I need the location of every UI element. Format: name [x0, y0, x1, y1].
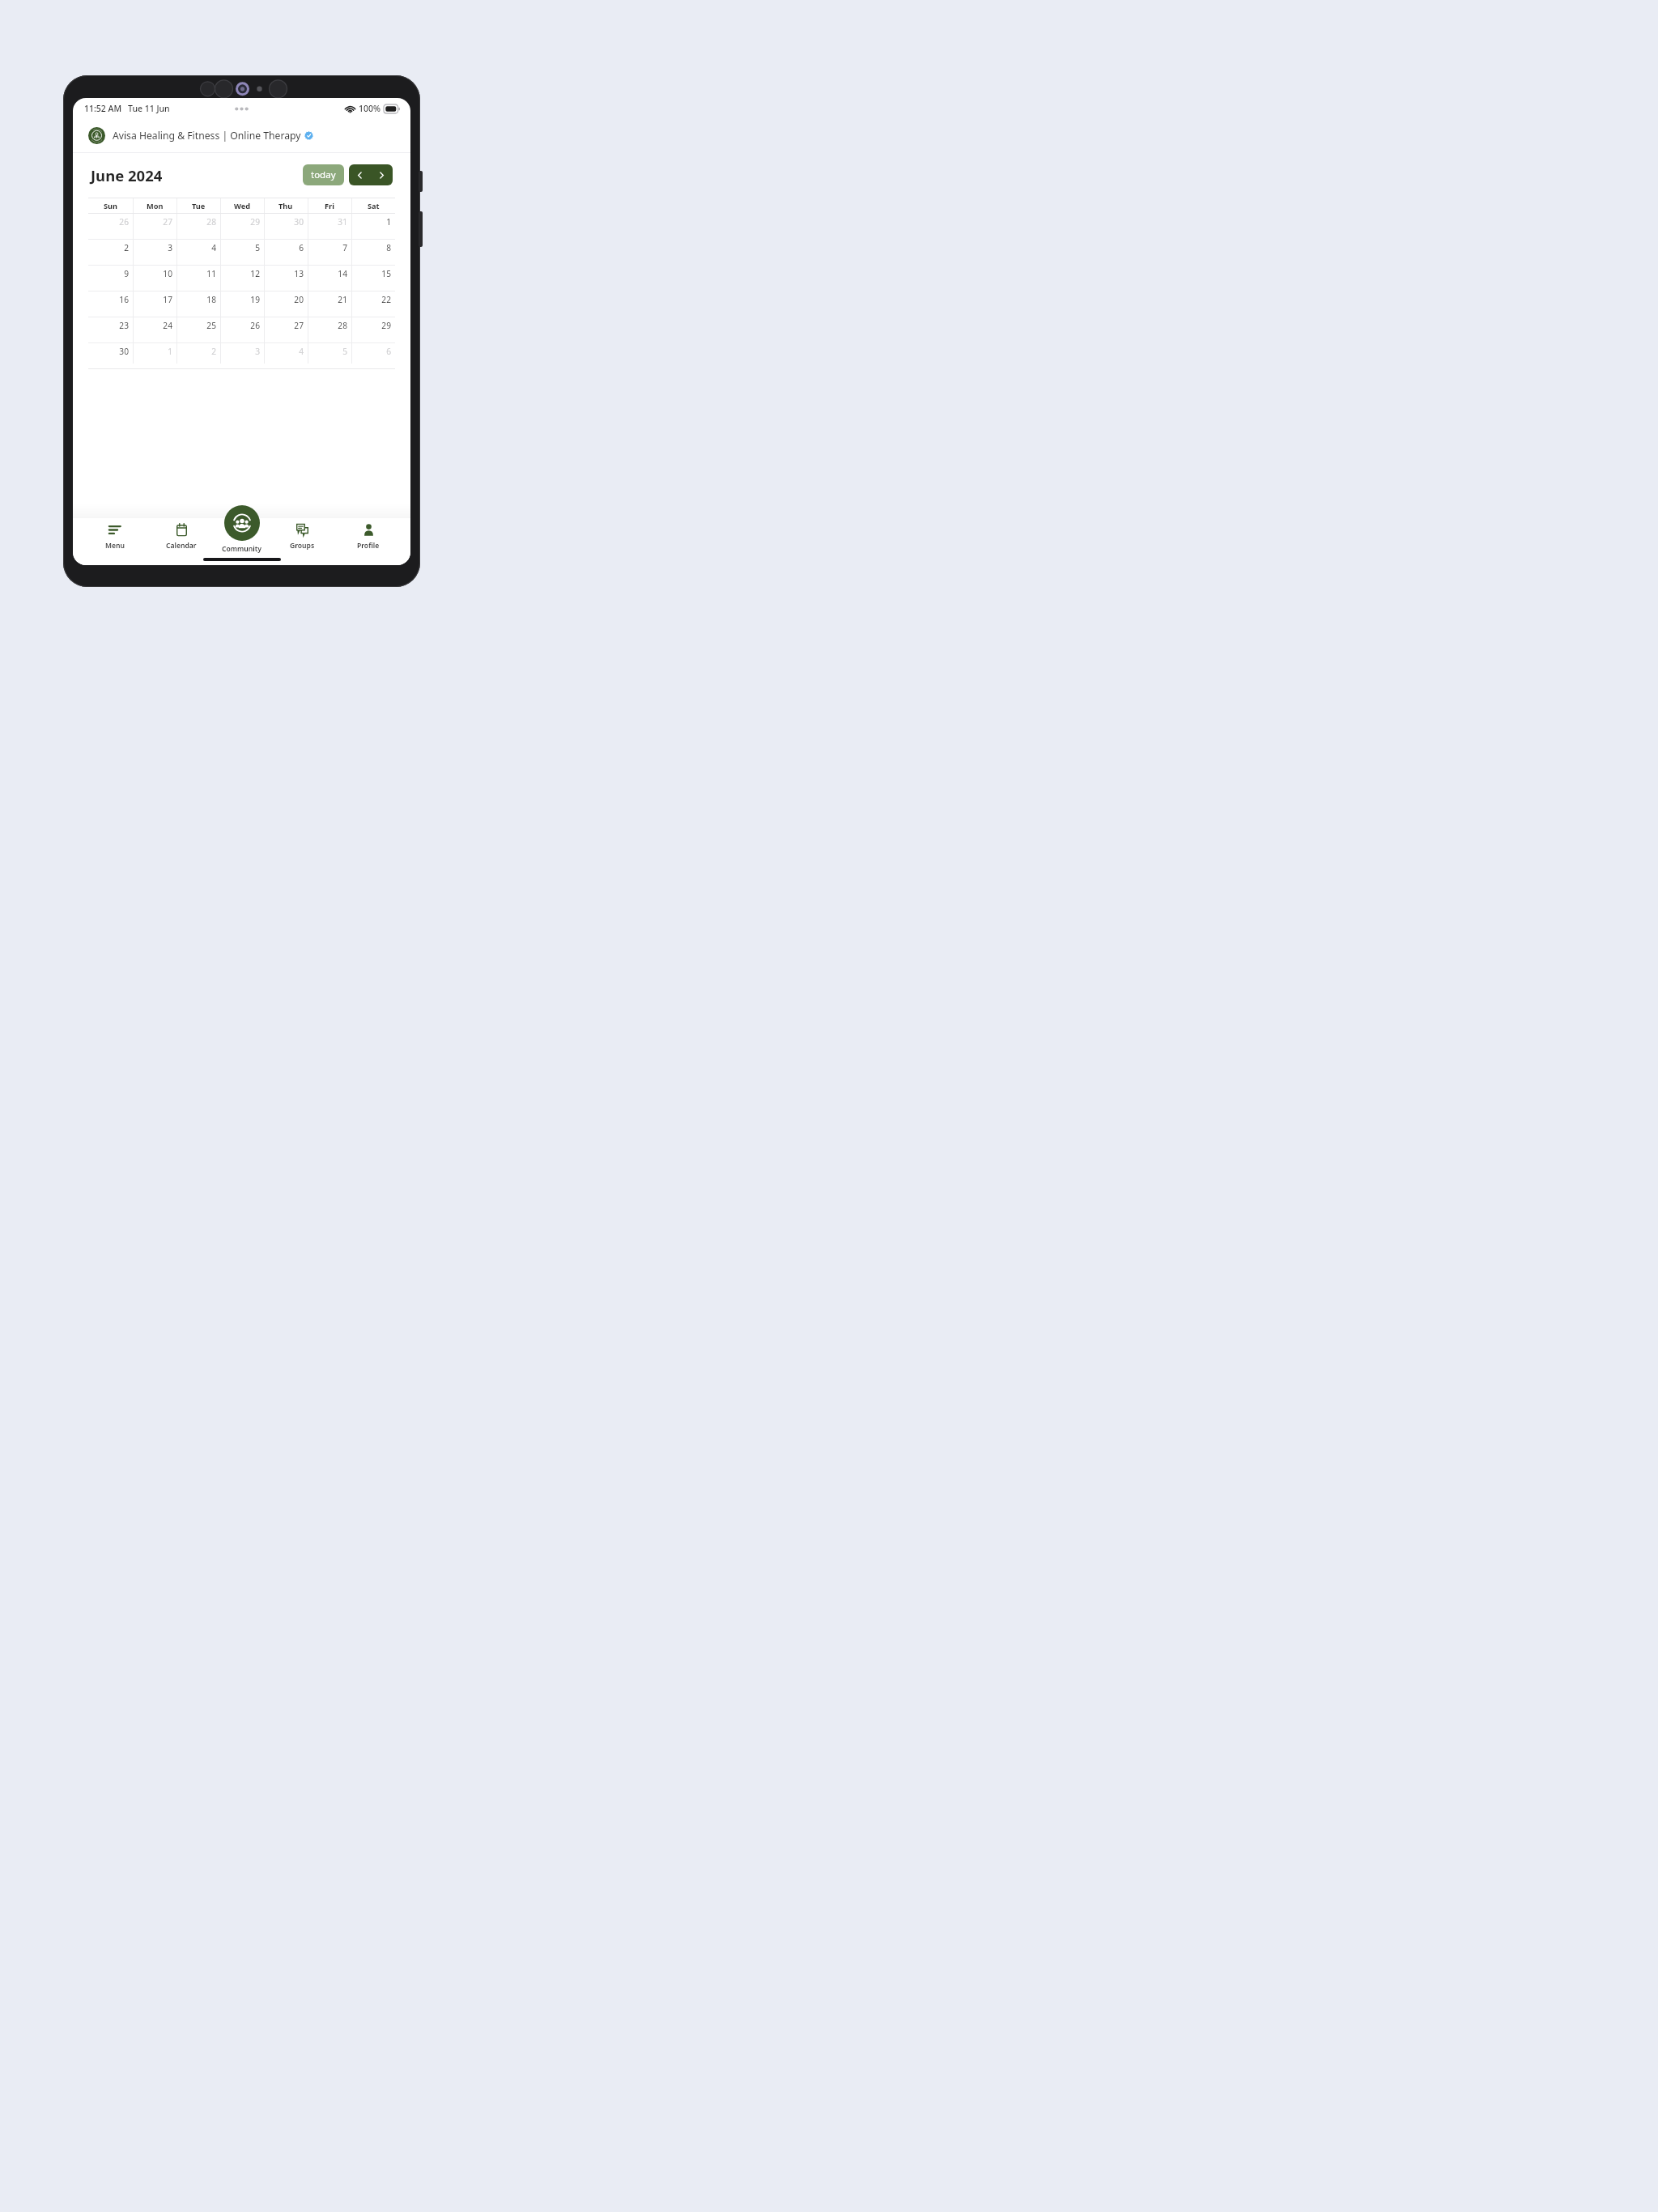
staticText: today	[311, 168, 336, 181]
staticText: 6	[299, 242, 304, 253]
button[interactable]: 28	[308, 317, 351, 342]
staticText: 11	[206, 268, 216, 279]
button[interactable]: 14	[308, 266, 351, 291]
button[interactable]: 29	[220, 214, 264, 239]
staticText: 2	[211, 346, 216, 357]
button[interactable]: 9	[88, 266, 133, 291]
button[interactable]: 25	[176, 317, 220, 342]
staticText: 3	[255, 346, 260, 357]
staticText: 23	[119, 320, 129, 331]
button[interactable]: 1	[351, 214, 395, 239]
button[interactable]: Previous month	[349, 164, 371, 185]
staticText: 30	[119, 346, 129, 357]
button[interactable]: 27	[264, 317, 308, 342]
staticText: 22	[381, 294, 391, 305]
button[interactable]: 27	[133, 214, 176, 239]
button[interactable]: 11	[176, 266, 220, 291]
button[interactable]: today	[303, 164, 344, 185]
staticText: 1	[168, 346, 172, 357]
staticText: 28	[338, 320, 347, 331]
button[interactable]: 1	[133, 343, 176, 368]
staticText: 17	[163, 294, 172, 305]
button[interactable]: 3	[133, 240, 176, 265]
staticText: Profile	[357, 541, 380, 551]
button[interactable]: Community	[224, 505, 260, 541]
button[interactable]: Tue	[176, 198, 220, 213]
button[interactable]: Sun	[88, 198, 133, 213]
button[interactable]: 29	[351, 317, 395, 342]
button[interactable]: 13	[264, 266, 308, 291]
button[interactable]: Groups	[278, 518, 326, 551]
staticText: Wed	[234, 201, 250, 211]
staticText: Calendar	[166, 541, 197, 551]
button[interactable]: Sat	[351, 198, 395, 213]
button[interactable]: 6	[264, 240, 308, 265]
button[interactable]: 2	[88, 240, 133, 265]
staticText: 12	[250, 268, 260, 279]
staticText: 25	[206, 320, 216, 331]
staticText: 2	[124, 242, 129, 253]
staticText: 1	[386, 216, 391, 228]
button[interactable]: Calendar	[157, 518, 206, 551]
staticText: 24	[163, 320, 172, 331]
staticText: 10	[163, 268, 172, 279]
staticText: 4	[211, 242, 216, 253]
button[interactable]: Avisa Healing & Fitness | Online Therapy	[73, 119, 410, 152]
button[interactable]: 21	[308, 291, 351, 317]
button[interactable]: 2	[176, 343, 220, 368]
staticText: 26	[119, 216, 129, 228]
staticText: Sun	[104, 201, 118, 211]
button[interactable]: 4	[176, 240, 220, 265]
staticText: Tue 11 Jun	[128, 103, 170, 114]
staticText: June 2024	[91, 165, 163, 185]
button[interactable]: 24	[133, 317, 176, 342]
staticText: 5	[255, 242, 260, 253]
button[interactable]: 10	[133, 266, 176, 291]
staticText: 18	[206, 294, 216, 305]
button[interactable]: 6	[351, 343, 395, 368]
button[interactable]: 16	[88, 291, 133, 317]
staticText: 14	[338, 268, 347, 279]
button[interactable]: 26	[88, 214, 133, 239]
button[interactable]: 28	[176, 214, 220, 239]
staticText: 5	[342, 346, 347, 357]
button[interactable]: Wed	[220, 198, 264, 213]
staticText: 3	[168, 242, 172, 253]
staticText: 9	[124, 268, 129, 279]
button[interactable]: 7	[308, 240, 351, 265]
staticText: Community	[222, 544, 261, 554]
button[interactable]: Mon	[133, 198, 176, 213]
staticText: 19	[250, 294, 260, 305]
staticText: 29	[381, 320, 391, 331]
button[interactable]: 20	[264, 291, 308, 317]
staticText: 16	[119, 294, 129, 305]
button[interactable]: 3	[220, 343, 264, 368]
button[interactable]: 17	[133, 291, 176, 317]
button[interactable]: Next month	[371, 164, 393, 185]
button[interactable]: 30	[88, 343, 133, 368]
button[interactable]: Profile	[344, 518, 393, 551]
button[interactable]: 8	[351, 240, 395, 265]
button[interactable]: Fri	[308, 198, 351, 213]
staticText: 27	[294, 320, 304, 331]
button[interactable]: 15	[351, 266, 395, 291]
staticText: 7	[342, 242, 347, 253]
button[interactable]: 31	[308, 214, 351, 239]
staticText: 30	[294, 216, 304, 228]
button[interactable]: 5	[220, 240, 264, 265]
button[interactable]: 18	[176, 291, 220, 317]
button[interactable]: 30	[264, 214, 308, 239]
button[interactable]: 23	[88, 317, 133, 342]
button[interactable]: 26	[220, 317, 264, 342]
button[interactable]: Thu	[264, 198, 308, 213]
button[interactable]: 4	[264, 343, 308, 368]
staticText: Thu	[278, 201, 293, 211]
staticText: 13	[294, 268, 304, 279]
button[interactable]: Menu	[91, 518, 139, 551]
button[interactable]: 22	[351, 291, 395, 317]
button[interactable]: 12	[220, 266, 264, 291]
other: Verified	[304, 131, 313, 140]
button[interactable]: 5	[308, 343, 351, 368]
staticText: Sat	[368, 201, 380, 211]
button[interactable]: 19	[220, 291, 264, 317]
